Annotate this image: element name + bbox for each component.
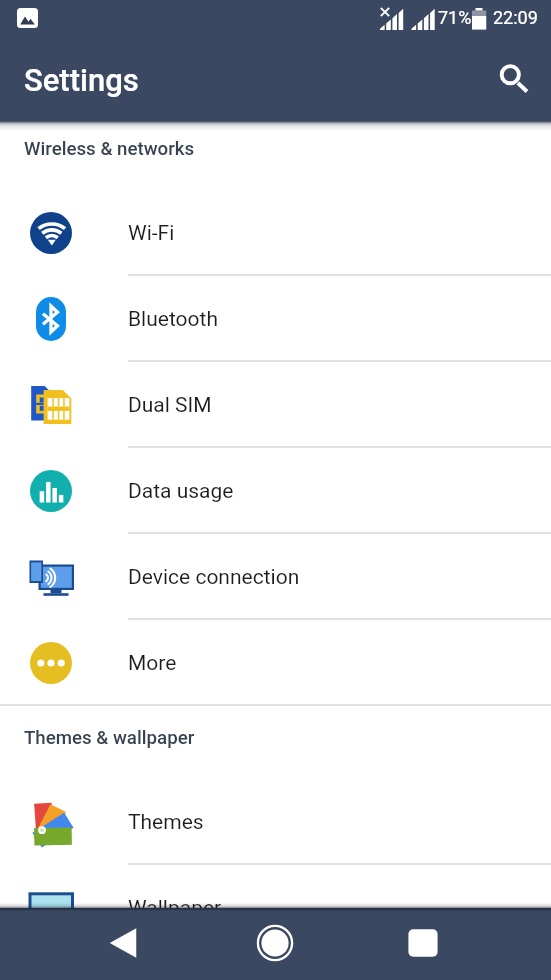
staticText: 71%: [438, 7, 472, 28]
button[interactable]: Data usage: [0, 448, 551, 534]
staticText: 22:09: [493, 7, 538, 28]
staticText: Dual SIM: [128, 393, 212, 418]
staticText: Data usage: [128, 479, 234, 504]
button[interactable]: Home: [244, 912, 306, 974]
staticText: Wi-Fi: [128, 221, 175, 246]
button[interactable]: Dual SIM: [0, 362, 551, 448]
staticText: Device connection: [128, 565, 300, 590]
button[interactable]: Themes: [0, 779, 551, 865]
button[interactable]: Wi-Fi: [0, 190, 551, 276]
button[interactable]: Back: [92, 912, 154, 974]
staticText: Wireless & networks: [24, 138, 195, 160]
button[interactable]: More: [0, 620, 551, 706]
staticText: More: [128, 651, 177, 676]
staticText: Wallpaper: [128, 896, 222, 921]
staticText: Themes & wallpaper: [24, 727, 195, 749]
staticText: Bluetooth: [128, 307, 218, 332]
staticText: Themes: [128, 810, 204, 835]
button[interactable]: Recents: [392, 912, 454, 974]
button[interactable]: Bluetooth: [0, 276, 551, 362]
staticText: Settings: [24, 62, 139, 98]
button[interactable]: Wallpaper: [0, 865, 551, 951]
button[interactable]: Device connection: [0, 534, 551, 620]
button[interactable]: Search: [490, 54, 538, 102]
